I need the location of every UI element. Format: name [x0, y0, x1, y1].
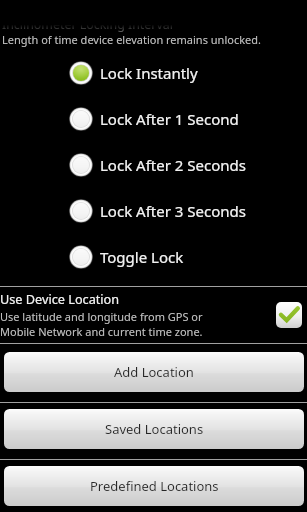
staticText: Lock After 1 Second: [100, 109, 239, 129]
staticText: Use Device Location: [0, 290, 120, 307]
staticText: Add Location: [114, 363, 194, 381]
staticText: Mobile Network and current time zone.: [0, 324, 203, 339]
staticText: Use latitude and longitude from GPS or: [0, 309, 203, 324]
button[interactable]: Lock After 3 Seconds: [0, 188, 307, 234]
staticText: Length of time device elevation remains …: [2, 32, 261, 47]
staticText: Lock After 3 Seconds: [100, 201, 246, 221]
staticText: Lock After 2 Seconds: [100, 155, 246, 175]
staticText: Saved Locations: [105, 420, 204, 438]
button[interactable]: Use Device Location: [0, 287, 307, 342]
staticText: Inclinometer Locking Interval: [2, 16, 173, 33]
button[interactable]: Predefined Locations: [4, 466, 304, 506]
button[interactable]: Use Device Location: [276, 302, 302, 328]
button[interactable]: Saved Locations: [4, 409, 304, 449]
button[interactable]: Lock After 1 Second: [0, 96, 307, 142]
staticText: Toggle Lock: [100, 247, 184, 267]
button[interactable]: Add Location: [4, 352, 304, 392]
staticText: Predefined Locations: [90, 477, 219, 495]
staticText: Lock Instantly: [100, 63, 198, 83]
button[interactable]: Lock Instantly: [0, 50, 307, 96]
button[interactable]: Toggle Lock: [0, 234, 307, 280]
button[interactable]: Lock After 2 Seconds: [0, 142, 307, 188]
